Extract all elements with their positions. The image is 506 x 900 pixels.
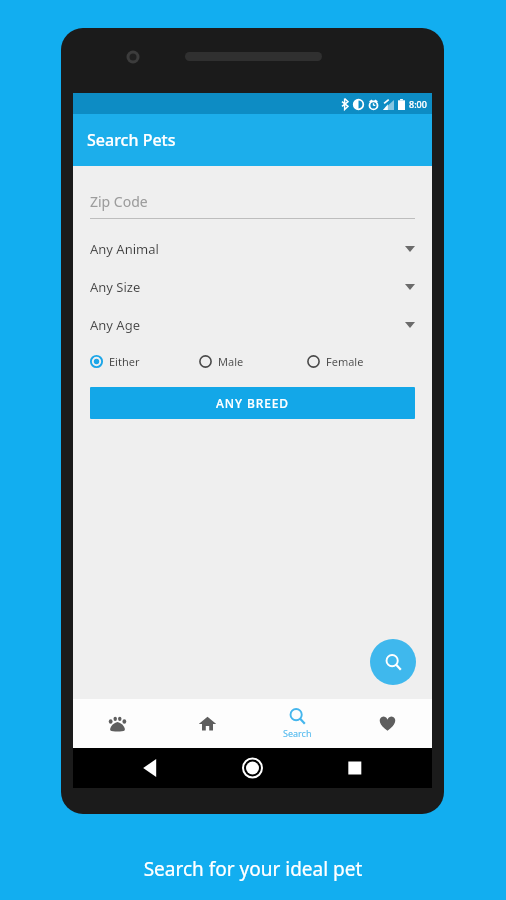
staticText: Any Animal <box>90 240 405 258</box>
staticText: Search for your ideal pet <box>0 856 506 882</box>
button[interactable]: Pets <box>73 699 162 748</box>
button[interactable]: Either <box>90 348 199 374</box>
other: Open Any Age dropdown <box>405 322 415 328</box>
staticText: Any Age <box>90 316 405 334</box>
button[interactable]: Any Animal <box>90 236 415 262</box>
staticText: Search Pets <box>87 129 176 151</box>
button[interactable]: Any Size <box>90 274 415 300</box>
other: Open Any Size dropdown <box>405 284 415 290</box>
staticText: ANY BREED <box>216 395 289 411</box>
staticText: Male <box>218 354 244 369</box>
button[interactable]: Search <box>252 699 342 748</box>
staticText: 8:00 <box>409 98 427 110</box>
staticText: Search <box>283 727 312 739</box>
button[interactable]: Female <box>307 348 415 374</box>
staticText: Female <box>326 354 364 369</box>
staticText: Any Size <box>90 278 405 296</box>
button[interactable]: ANY BREED <box>90 387 415 419</box>
button[interactable]: Home <box>162 699 252 748</box>
other: Open Any Animal dropdown <box>405 246 415 252</box>
button[interactable]: Favorites <box>342 699 432 748</box>
button[interactable]: Any Age <box>90 312 415 338</box>
button[interactable]: Search <box>370 639 416 685</box>
staticText: Either <box>109 354 140 369</box>
button[interactable]: Male <box>199 348 307 374</box>
button[interactable]: Zip Code <box>90 192 415 219</box>
staticText: Zip Code <box>90 192 148 211</box>
